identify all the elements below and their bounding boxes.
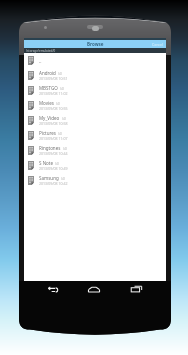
staticText: .. xyxy=(39,58,42,64)
staticText: 2013/09/08 10:44 xyxy=(39,151,68,156)
staticText: Samsung xyxy=(39,175,59,181)
button[interactable]: Movies xyxy=(24,98,166,113)
staticText: (4) xyxy=(58,131,63,136)
button[interactable]: Back xyxy=(40,281,64,297)
staticText: (4) xyxy=(62,116,67,121)
staticText: 2013/09/08 10:49 xyxy=(39,166,68,171)
staticText: (4) xyxy=(60,86,65,91)
button[interactable]: Pictures xyxy=(24,128,166,143)
button[interactable]: .. xyxy=(24,53,166,68)
staticText: 2013/09/08 11:02 xyxy=(39,91,68,96)
staticText: MBSTGO xyxy=(39,85,58,91)
button[interactable]: Ringtones xyxy=(24,143,166,158)
staticText: S Note xyxy=(39,160,53,166)
staticText: 2013/09/08 10:42 xyxy=(39,181,68,186)
staticText: Ringtones xyxy=(39,145,61,151)
staticText: 2013/09/08 10:51 xyxy=(39,76,68,81)
staticText: (4) xyxy=(61,176,66,181)
staticText: 2013/09/08 10:55 xyxy=(39,106,68,111)
button[interactable]: Android xyxy=(24,68,166,83)
staticText: /storage/emulated/0 xyxy=(26,49,56,53)
staticText: (4) xyxy=(63,146,68,151)
staticText: 2013/09/08 11:07 xyxy=(39,136,68,141)
button[interactable]: S Note xyxy=(24,158,166,173)
staticText: Browse xyxy=(87,41,104,47)
button[interactable]: Recent apps xyxy=(124,281,148,297)
staticText: Cancel xyxy=(152,42,163,47)
button[interactable]: MBSTGO xyxy=(24,83,166,98)
staticText: (4) xyxy=(55,161,60,166)
staticText: 2013/09/08 10:58 xyxy=(39,121,68,126)
staticText: Movies xyxy=(39,100,54,106)
button[interactable]: Browse xyxy=(24,40,166,48)
staticText: (4) xyxy=(56,101,61,106)
staticText: (4) xyxy=(58,71,63,76)
button[interactable]: Samsung xyxy=(24,173,166,188)
button[interactable]: My_Video xyxy=(24,113,166,128)
staticText: My_Video xyxy=(39,115,60,121)
staticText: Android xyxy=(39,70,56,76)
button[interactable]: Home xyxy=(82,281,106,297)
staticText: Pictures xyxy=(39,130,56,136)
